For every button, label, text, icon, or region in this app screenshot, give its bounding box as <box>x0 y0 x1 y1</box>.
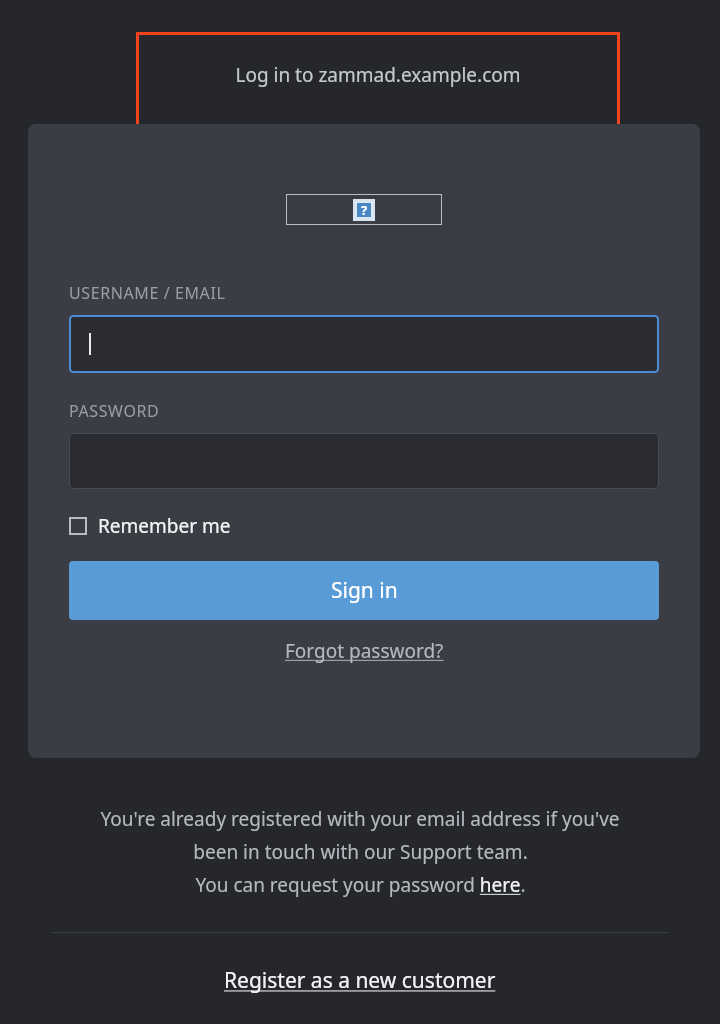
staticText: PASSWORD <box>69 400 160 422</box>
staticText: Remember me <box>98 513 231 539</box>
staticText: Sign in <box>331 576 398 605</box>
staticText: You can request your password here. <box>195 872 526 898</box>
button[interactable]: Forgot password? <box>285 638 444 664</box>
staticText: USERNAME / EMAIL <box>69 282 226 304</box>
button[interactable] <box>69 433 659 489</box>
staticText: You're already registered with your emai… <box>100 806 620 832</box>
button[interactable]: You can request your password here. <box>195 872 526 898</box>
button[interactable]: Remember me <box>69 513 231 539</box>
staticText: Register as a new customer <box>224 966 496 995</box>
staticText: Forgot password? <box>285 638 444 664</box>
button[interactable]: Sign in <box>69 561 659 620</box>
button[interactable]: Register as a new customer <box>224 966 496 995</box>
button[interactable] <box>69 315 659 373</box>
staticText: Log in to zammad.example.com <box>235 62 521 88</box>
staticText: ? <box>361 201 368 219</box>
button[interactable]: Log in to zammad.example.com <box>136 32 620 144</box>
other: Missing image <box>353 199 375 221</box>
staticText: been in touch with our Support team. <box>193 839 528 865</box>
